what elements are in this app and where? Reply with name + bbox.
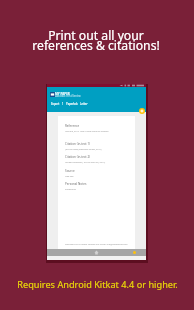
button[interactable]: Letter xyxy=(80,102,88,106)
button[interactable]: Paperbck xyxy=(66,102,78,106)
staticText: Letter xyxy=(80,102,88,106)
button[interactable]: Source xyxy=(65,169,142,178)
staticText: Longer parenthes, as you spot lon, 2017) xyxy=(65,161,106,164)
staticText: Personal Notes xyxy=(65,182,87,186)
staticText: Export xyxy=(51,102,60,106)
button[interactable]: 1 xyxy=(62,102,64,106)
staticText: Copyright 2017 Pocket Citation Pro. Emai… xyxy=(65,243,128,246)
staticText: Web Site xyxy=(65,175,74,178)
staticText: Citation (in-text 2) xyxy=(65,155,91,159)
staticText: Source xyxy=(65,169,75,173)
staticText: Something xyxy=(65,188,76,191)
staticText: Print out all your references & citation… xyxy=(32,27,160,54)
staticText: MY PAPER xyxy=(55,92,70,96)
staticText: Paperbck xyxy=(66,102,78,106)
staticText: (as you know) mentions longer, 2017) xyxy=(65,148,102,151)
button[interactable]: Export xyxy=(51,102,60,106)
staticText: 1 xyxy=(62,102,64,106)
button[interactable]: Personal Notes xyxy=(65,182,142,191)
button[interactable]: Citation (in-text 2) xyxy=(65,155,142,164)
staticText: Reference xyxy=(65,124,80,128)
button[interactable]: MY PAPER xyxy=(47,87,146,112)
staticText: Harvard, 2017. How I used some ref numbe… xyxy=(65,130,109,133)
button[interactable]: Add citation xyxy=(139,108,145,114)
button[interactable]: Citation (in-text 1) xyxy=(65,142,142,151)
staticText: Abstract First Sentnc xyxy=(55,94,81,98)
button[interactable]: Reference xyxy=(65,124,142,133)
staticText: Citation (in-text 1) xyxy=(65,142,91,146)
staticText: Requires Android Kitkat 4.4 or higher. xyxy=(17,278,178,291)
